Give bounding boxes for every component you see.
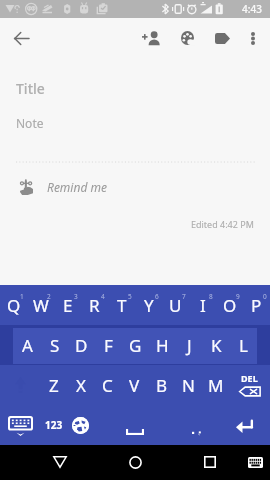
button[interactable]: X: [67, 365, 94, 405]
staticText: G: [129, 334, 142, 357]
button[interactable]: O: [216, 285, 243, 325]
staticText: 123: [45, 418, 63, 432]
button[interactable]: More options: [239, 18, 266, 58]
button[interactable]: S: [41, 325, 68, 365]
staticText: L: [239, 334, 248, 357]
staticText: 4: [101, 292, 105, 301]
button[interactable]: Hide keyboard: [0, 405, 40, 445]
button[interactable]: A: [13, 325, 41, 365]
button[interactable]: Remind me: [0, 173, 270, 201]
staticText: H: [156, 334, 169, 357]
button[interactable]: K: [203, 325, 230, 365]
staticText: 1: [20, 292, 24, 301]
button[interactable]: U: [162, 285, 189, 325]
button[interactable]: I: [189, 285, 216, 325]
button[interactable]: Change keyboard language: [67, 405, 94, 445]
button[interactable]: H: [149, 325, 176, 365]
button[interactable]: Q: [0, 285, 27, 325]
button[interactable]: N: [175, 365, 202, 405]
button[interactable]: W: [27, 285, 54, 325]
staticText: 7: [182, 292, 186, 301]
staticText: K: [211, 334, 222, 357]
staticText: Z: [49, 374, 59, 397]
button[interactable]: Switch keyboard: [240, 447, 270, 477]
button[interactable]: T: [108, 285, 135, 325]
button[interactable]: C: [94, 365, 121, 405]
staticText: C: [102, 374, 113, 397]
button[interactable]: L: [230, 325, 257, 365]
button[interactable]: Recent apps: [193, 445, 227, 479]
button[interactable]: J: [176, 325, 203, 365]
button[interactable]: Z: [40, 365, 67, 405]
staticText: 8: [209, 292, 213, 301]
staticText: 0: [263, 292, 267, 301]
staticText: Title: [16, 79, 45, 98]
staticText: F: [104, 334, 113, 357]
button[interactable]: Navigate up: [4, 21, 38, 55]
staticText: O: [223, 294, 237, 317]
staticText: Note: [16, 115, 44, 131]
staticText: N: [182, 374, 195, 397]
staticText: J: [187, 334, 192, 357]
staticText: Q: [7, 294, 21, 317]
staticText: 9: [236, 292, 240, 301]
staticText: E: [63, 294, 73, 317]
staticText: I: [200, 294, 206, 317]
staticText: S: [50, 334, 60, 357]
staticText: 4:43: [242, 2, 262, 16]
button[interactable]: Add collaborator: [133, 18, 169, 58]
button[interactable]: Add label: [205, 18, 239, 58]
staticText: U: [169, 294, 182, 317]
staticText: D: [75, 334, 88, 357]
button[interactable]: Enter: [223, 405, 270, 445]
staticText: 5: [128, 292, 132, 301]
staticText: Edited 4:42 PM: [191, 218, 254, 230]
staticText: M: [208, 374, 224, 397]
staticText: 3: [74, 292, 78, 301]
button[interactable]: Home: [118, 445, 152, 479]
button[interactable]: F: [95, 325, 122, 365]
button[interactable]: E: [54, 285, 81, 325]
button[interactable]: [183, 405, 223, 445]
button[interactable]: Change color: [169, 18, 205, 58]
staticText: V: [129, 374, 140, 397]
staticText: Y: [144, 294, 154, 317]
button[interactable]: M: [202, 365, 229, 405]
button[interactable]: Y: [135, 285, 162, 325]
button[interactable]: P: [243, 285, 270, 325]
staticText: P: [251, 294, 262, 317]
button[interactable]: 123: [40, 405, 67, 445]
button[interactable]: B: [148, 365, 175, 405]
staticText: W: [33, 294, 49, 317]
button[interactable]: Space: [94, 405, 183, 445]
staticText: T: [117, 294, 127, 317]
staticText: R: [89, 294, 100, 317]
staticText: B: [156, 374, 168, 397]
button[interactable]: V: [121, 365, 148, 405]
staticText: DEL: [241, 372, 258, 384]
staticText: X: [76, 374, 86, 397]
button[interactable]: R: [81, 285, 108, 325]
button[interactable]: Back: [43, 445, 77, 479]
staticText: Remind me: [47, 179, 107, 195]
staticText: 2: [47, 292, 51, 301]
staticText: A: [22, 334, 33, 357]
staticText: 6: [155, 292, 159, 301]
button[interactable]: G: [122, 325, 149, 365]
button[interactable]: D: [68, 325, 95, 365]
button[interactable]: Delete: [229, 365, 270, 405]
